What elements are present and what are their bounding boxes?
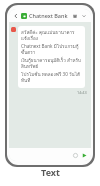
button[interactable]: More: [80, 12, 88, 20]
button[interactable]: สวัสดีค่ะ คุณแม่นธานาคารแจ้งเรื่อง: [18, 26, 85, 88]
staticText: Chatnext Bank: [29, 12, 71, 19]
button[interactable]: Store: [71, 12, 79, 20]
button[interactable]: Send: [80, 151, 88, 159]
button[interactable]: Emoji: [71, 151, 79, 159]
staticText: เงินกู้ธนาคารอนุมัติเร็ว สำหรับสินทรัพย์: [21, 57, 82, 71]
staticText: Chatnext Bank มีโปรแกรมกู้ขั้นตรา: [21, 43, 82, 57]
staticText: 14:43: [77, 90, 87, 95]
button[interactable]: Back: [12, 12, 20, 20]
staticText: สวัสดีค่ะ คุณแม่นธานาคารแจ้งเรื่อง: [21, 29, 82, 43]
button[interactable]: Avatar: [11, 27, 16, 32]
staticText: โปรโมชั่น ทดลองฟรี 30 วันได้ทันที: [21, 71, 82, 85]
staticText: Text: [41, 166, 60, 178]
